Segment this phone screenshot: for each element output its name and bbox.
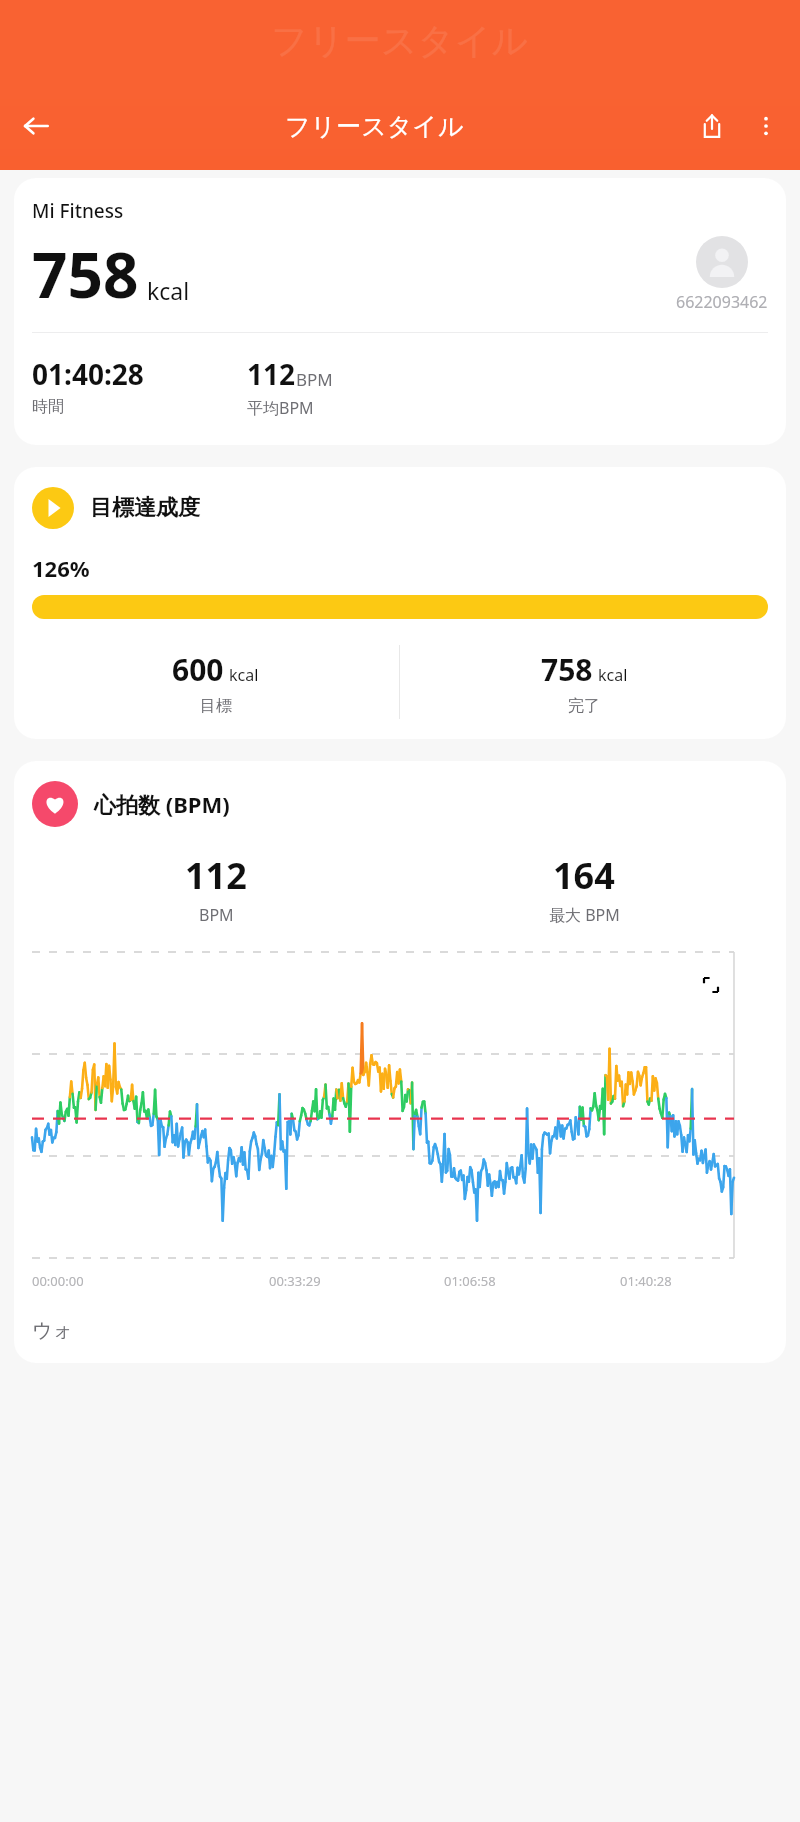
staticText: 01:40:28 [32, 355, 144, 393]
staticText: Mi Fitness [32, 198, 124, 224]
staticText: 目標 [200, 696, 232, 716]
button[interactable]: 目標達成度 [14, 467, 786, 739]
staticText: kcal [598, 664, 628, 686]
staticText: 126% [32, 553, 90, 583]
staticText: 平均BPM [247, 397, 314, 419]
button[interactable]: Mi Fitness [14, 178, 786, 445]
staticText: 112 [185, 851, 247, 900]
button[interactable]: More options [744, 104, 788, 148]
staticText: 6622093462 [676, 291, 768, 313]
staticText: 600 [172, 649, 224, 690]
staticText: ウォ [32, 1318, 73, 1343]
button[interactable]: Back [12, 102, 60, 150]
staticText: 758 [32, 232, 139, 316]
staticText: 目標達成度 [90, 494, 200, 522]
staticText: 心拍数 (BPM) [94, 789, 230, 819]
staticText: kcal [147, 275, 190, 306]
staticText: 01:06:58 [444, 1272, 496, 1290]
button[interactable]: Share [688, 102, 736, 150]
staticText: kcal [229, 664, 259, 686]
staticText: 00:00:00 [32, 1272, 84, 1290]
staticText: 164 [553, 851, 615, 900]
staticText: 時間 [32, 397, 64, 417]
staticText: フリースタイル [271, 18, 529, 63]
staticText: BPM [199, 904, 234, 926]
staticText: 112 [247, 355, 296, 393]
staticText: 00:33:29 [269, 1272, 321, 1290]
staticText: 01:40:28 [620, 1272, 672, 1290]
staticText: 最大 BPM [549, 904, 620, 926]
button[interactable]: Expand chart [694, 968, 728, 1002]
button[interactable]: 心拍数 (BPM) [14, 761, 786, 1363]
staticText: フリースタイル [285, 111, 464, 142]
staticText: 758 [541, 649, 593, 690]
staticText: BPM [296, 368, 333, 391]
staticText: 完了 [568, 696, 600, 716]
